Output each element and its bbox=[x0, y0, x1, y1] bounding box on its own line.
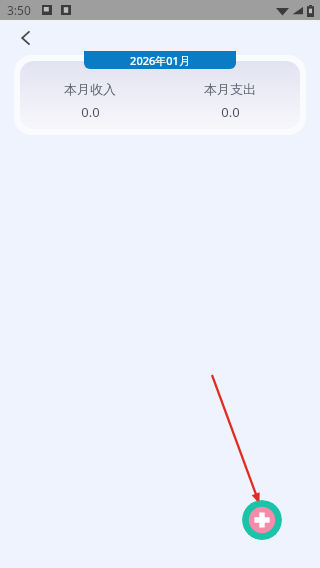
button[interactable]: Back bbox=[12, 24, 40, 52]
staticText: 2026年01月 bbox=[130, 53, 190, 68]
button[interactable]: 2026年01月 bbox=[84, 51, 236, 69]
staticText: 3:50 bbox=[7, 2, 31, 18]
staticText: 本月支出 bbox=[204, 81, 256, 97]
staticText: 0.0 bbox=[221, 103, 240, 121]
staticText: 本月收入 bbox=[64, 81, 116, 97]
staticText: 0.0 bbox=[81, 103, 100, 121]
button[interactable]: 本月收入 bbox=[20, 61, 300, 129]
button[interactable]: Add record bbox=[242, 500, 282, 540]
